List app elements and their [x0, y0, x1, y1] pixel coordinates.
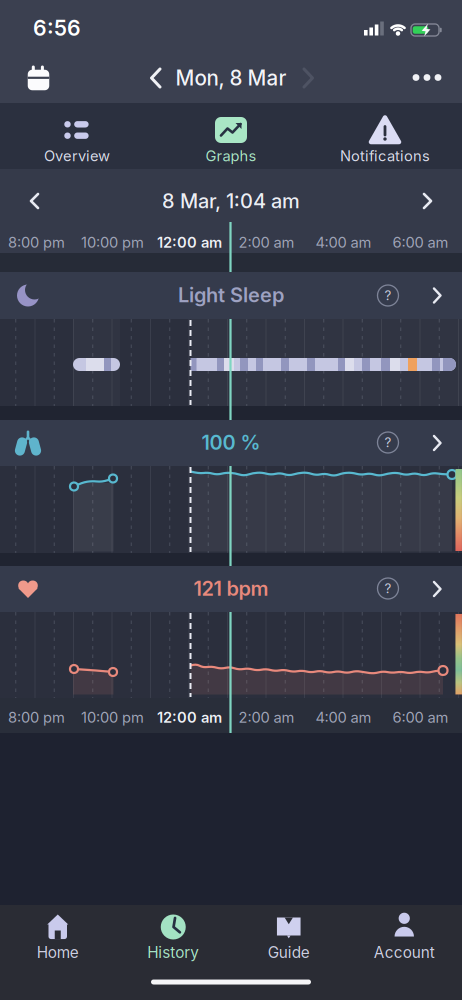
- button[interactable]: Light Sleep: [0, 272, 462, 319]
- staticText: Account: [374, 943, 435, 962]
- button[interactable]: ?: [373, 427, 403, 457]
- staticText: ?: [384, 580, 391, 596]
- button[interactable]: Home: [0, 897, 115, 965]
- staticText: 12:00 am: [157, 709, 222, 726]
- staticText: 6:56: [33, 15, 81, 41]
- staticText: 2:00 am: [238, 234, 294, 251]
- staticText: Light Sleep: [178, 283, 284, 307]
- button[interactable]: Overview: [0, 103, 154, 169]
- button[interactable]: ?: [373, 280, 403, 310]
- staticText: Guide: [268, 943, 310, 962]
- staticText: 6:00 am: [392, 234, 448, 251]
- staticText: 121 bpm: [193, 576, 268, 601]
- button[interactable]: Account: [347, 897, 462, 965]
- button[interactable]: 100 %: [0, 420, 462, 466]
- staticText: 6:00 am: [392, 709, 448, 726]
- staticText: 2:00 am: [238, 709, 294, 726]
- button[interactable]: [16, 55, 60, 99]
- staticText: 12:00 am: [157, 234, 222, 251]
- staticText: Overview: [44, 147, 110, 165]
- button[interactable]: [134, 56, 178, 100]
- button[interactable]: Notifications: [308, 103, 462, 169]
- staticText: 4:00 am: [315, 234, 371, 251]
- button[interactable]: Guide: [231, 897, 346, 965]
- staticText: ?: [384, 434, 391, 450]
- staticText: 10:00 pm: [81, 234, 144, 251]
- button[interactable]: [405, 177, 449, 225]
- button[interactable]: [405, 55, 449, 99]
- staticText: Home: [37, 943, 79, 962]
- staticText: 4:00 am: [315, 709, 371, 726]
- staticText: 8:00 pm: [8, 234, 65, 251]
- button[interactable]: Graphs: [154, 103, 308, 169]
- button[interactable]: 121 bpm: [0, 566, 462, 612]
- staticText: ?: [384, 287, 391, 303]
- staticText: 100 %: [201, 430, 260, 455]
- staticText: History: [147, 943, 199, 962]
- staticText: 10:00 pm: [81, 709, 144, 726]
- button[interactable]: [13, 177, 57, 225]
- staticText: 8:00 pm: [8, 709, 65, 726]
- staticText: Mon, 8 Mar: [175, 65, 286, 90]
- button[interactable]: [286, 56, 330, 100]
- staticText: Notifications: [340, 147, 430, 165]
- button[interactable]: History: [116, 897, 231, 965]
- staticText: Graphs: [205, 147, 256, 165]
- staticText: 8 Mar, 1:04 am: [162, 189, 300, 213]
- button[interactable]: ?: [373, 573, 403, 603]
